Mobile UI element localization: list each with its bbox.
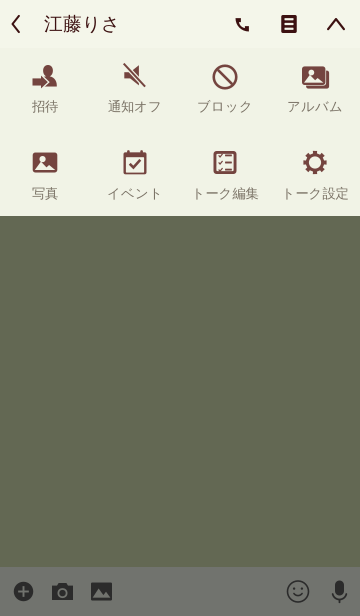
button[interactable]: Back [0, 0, 32, 48]
button[interactable]: トーク編集 [180, 149, 270, 200]
button[interactable]: Voice message [319, 567, 360, 616]
button[interactable]: トーク設定 [270, 149, 360, 200]
button[interactable]: Call [220, 0, 266, 48]
button[interactable]: More options [4, 567, 43, 616]
button[interactable]: Collapse menu [312, 0, 360, 48]
button[interactable]: Stickers [277, 567, 319, 616]
staticText: イベント [107, 185, 163, 202]
staticText: 写真 [32, 185, 58, 202]
staticText: 招待 [32, 98, 58, 115]
button[interactable]: 通知オフ [90, 62, 180, 113]
staticText: 通知オフ [108, 98, 162, 115]
staticText: 江藤りさ [44, 12, 120, 35]
staticText: アルバム [287, 98, 343, 115]
staticText: トーク編集 [191, 185, 258, 202]
staticText: ブロック [197, 98, 253, 115]
button[interactable]: 写真 [0, 149, 90, 200]
button[interactable]: ブロック [180, 62, 270, 113]
button[interactable]: イベント [90, 149, 180, 200]
staticText: トーク設定 [281, 185, 348, 202]
button[interactable]: 招待 [0, 62, 90, 113]
button[interactable]: アルバム [270, 62, 360, 113]
button[interactable]: Photo library [82, 567, 121, 616]
button[interactable]: Menu [266, 0, 312, 48]
button[interactable]: Camera [43, 567, 82, 616]
